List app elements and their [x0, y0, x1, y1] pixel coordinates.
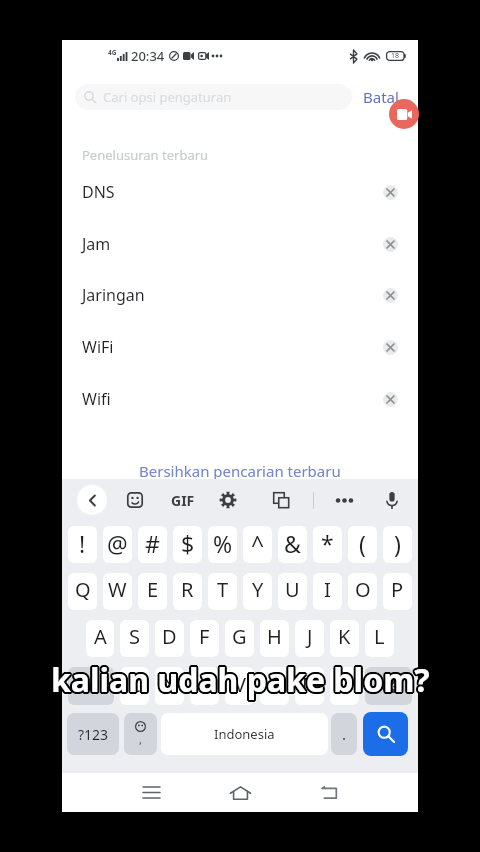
- button[interactable]: P: [383, 573, 412, 610]
- button[interactable]: E: [138, 573, 167, 610]
- staticText: kalian udah pake blom?: [50, 659, 429, 703]
- button[interactable]: Recents: [128, 773, 174, 812]
- button[interactable]: More options: [330, 486, 358, 514]
- staticText: M: [335, 671, 354, 698]
- button[interactable]: Settings: [214, 486, 242, 514]
- button[interactable]: Bersihkan pencarian terbaru: [62, 461, 418, 481]
- button[interactable]: Jaringan: [62, 269, 418, 321]
- button[interactable]: &: [278, 526, 307, 563]
- staticText: kalian udah pake blom?: [52, 659, 431, 703]
- button[interactable]: Remove Jaringan: [383, 288, 398, 303]
- staticText: D: [162, 623, 177, 650]
- button[interactable]: Stickers: [121, 486, 149, 514]
- button[interactable]: Remove Jam: [383, 237, 398, 252]
- staticText: &: [284, 528, 301, 559]
- button[interactable]: Voice input: [378, 486, 406, 514]
- staticText: 20:34: [131, 47, 165, 65]
- button[interactable]: Cari opsi pengaturan: [75, 84, 352, 110]
- button[interactable]: Search: [363, 712, 408, 756]
- staticText: kalian udah pake blom?: [51, 657, 430, 701]
- button[interactable]: Backspace: [365, 667, 412, 705]
- button[interactable]: T: [208, 573, 237, 610]
- staticText: @: [107, 528, 128, 559]
- button[interactable]: C: [190, 667, 219, 705]
- staticText: Cari opsi pengaturan: [103, 88, 232, 106]
- button[interactable]: *: [313, 526, 342, 563]
- staticText: #: [145, 528, 160, 559]
- staticText: T: [217, 576, 229, 603]
- button[interactable]: ^: [243, 526, 272, 563]
- staticText: kalian udah pake blom?: [50, 660, 429, 704]
- button[interactable]: J: [295, 620, 324, 657]
- button[interactable]: %: [208, 526, 237, 563]
- button[interactable]: Z: [120, 667, 149, 705]
- button[interactable]: ?123: [67, 713, 119, 755]
- staticText: *: [321, 528, 334, 559]
- staticText: kalian udah pake blom?: [51, 660, 430, 704]
- staticText: kalian udah pake blom?: [51, 656, 430, 700]
- button[interactable]: S: [120, 620, 149, 657]
- staticText: W: [108, 576, 127, 603]
- staticText: kalian udah pake blom?: [49, 657, 428, 701]
- button[interactable]: DNS: [62, 166, 418, 218]
- button[interactable]: U: [278, 573, 307, 610]
- button[interactable]: L: [365, 620, 394, 657]
- staticText: kalian udah pake blom?: [50, 656, 429, 700]
- button[interactable]: @: [103, 526, 132, 563]
- button[interactable]: $: [173, 526, 202, 563]
- button[interactable]: F: [190, 620, 219, 657]
- button[interactable]: Shift: [68, 667, 114, 705]
- button[interactable]: H: [260, 620, 289, 657]
- button[interactable]: Back: [77, 485, 107, 515]
- button[interactable]: W: [103, 573, 132, 610]
- button[interactable]: #: [138, 526, 167, 563]
- button[interactable]: ): [383, 526, 412, 563]
- button[interactable]: Y: [243, 573, 272, 610]
- staticText: Penelusuran terbaru: [82, 146, 209, 164]
- staticText: Bersihkan pencarian terbaru: [139, 461, 341, 481]
- button[interactable]: N: [295, 667, 324, 705]
- staticText: ^: [251, 528, 265, 559]
- staticText: ?123: [78, 725, 109, 744]
- button[interactable]: Emoji and comma: [124, 713, 157, 755]
- button[interactable]: Translate: [267, 486, 295, 514]
- staticText: B: [268, 671, 281, 698]
- button[interactable]: GIF: [168, 487, 198, 513]
- button[interactable]: Record: [389, 99, 419, 129]
- button[interactable]: Back: [305, 773, 351, 812]
- button[interactable]: I: [313, 573, 342, 610]
- button[interactable]: V: [225, 667, 254, 705]
- button[interactable]: Indonesia: [161, 713, 328, 755]
- button[interactable]: WiFi: [62, 321, 418, 373]
- button[interactable]: Home: [217, 773, 263, 812]
- button[interactable]: !: [68, 526, 97, 563]
- staticText: kalian udah pake blom?: [53, 659, 432, 703]
- staticText: ,: [139, 732, 142, 747]
- staticText: kalian udah pake blom?: [49, 658, 428, 702]
- button[interactable]: Batal: [361, 82, 401, 112]
- staticText: U: [285, 576, 300, 603]
- button[interactable]: G: [225, 620, 254, 657]
- staticText: R: [181, 576, 194, 603]
- button[interactable]: Q: [68, 573, 97, 610]
- button[interactable]: .: [331, 713, 357, 755]
- button[interactable]: R: [173, 573, 202, 610]
- button[interactable]: O: [348, 573, 377, 610]
- button[interactable]: (: [348, 526, 377, 563]
- button[interactable]: Jam: [62, 218, 418, 270]
- button[interactable]: X: [155, 667, 184, 705]
- button[interactable]: Remove WiFi: [383, 340, 398, 355]
- staticText: Batal: [363, 87, 399, 107]
- staticText: Wifi: [82, 388, 111, 410]
- button[interactable]: M: [330, 667, 359, 705]
- button[interactable]: K: [330, 620, 359, 657]
- button[interactable]: Remove DNS: [383, 185, 398, 200]
- button[interactable]: Remove Wifi: [383, 392, 398, 407]
- button[interactable]: D: [155, 620, 184, 657]
- staticText: kalian udah pake blom?: [52, 658, 431, 702]
- button[interactable]: Wifi: [62, 373, 418, 425]
- button[interactable]: B: [260, 667, 289, 705]
- staticText: C: [198, 671, 211, 698]
- button[interactable]: A: [86, 620, 114, 657]
- staticText: kalian udah pake blom?: [53, 658, 432, 702]
